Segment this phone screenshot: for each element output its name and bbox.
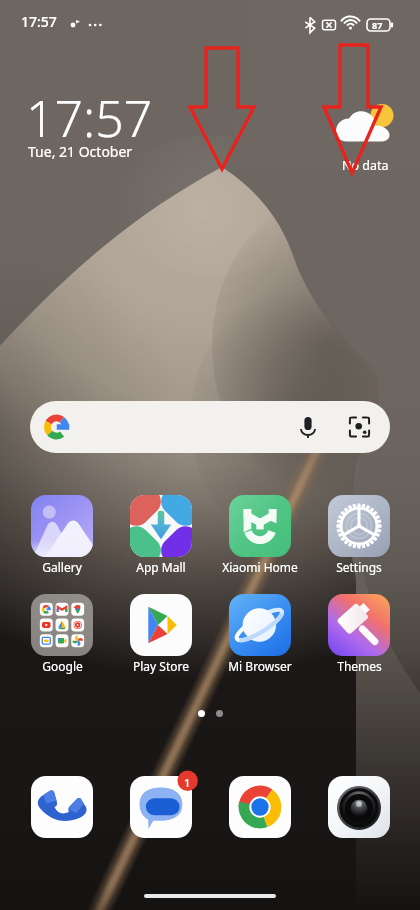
button[interactable]: Chrome — [229, 776, 291, 838]
button[interactable]: Search — [30, 401, 390, 453]
staticText: Xiaomi Home — [222, 559, 298, 575]
staticText: 17:57 — [21, 12, 57, 31]
button[interactable]: Mi Browser — [215, 594, 305, 674]
button[interactable]: Play Store — [116, 594, 206, 674]
staticText: Settings — [336, 559, 382, 575]
staticText: Tue, 21 October — [28, 142, 133, 161]
staticText: 87 — [372, 19, 383, 31]
button[interactable]: Settings — [314, 495, 404, 575]
staticText: Themes — [337, 658, 382, 674]
staticText: 17:57 — [26, 84, 153, 152]
button[interactable]: Xiaomi Home — [215, 495, 305, 575]
staticText: App Mall — [136, 559, 186, 575]
button[interactable]: Weather — [330, 100, 406, 168]
staticText: Google — [42, 658, 83, 674]
staticText: No data — [342, 157, 389, 174]
button[interactable]: Phone — [31, 776, 93, 838]
button[interactable]: Gallery — [17, 495, 107, 575]
button[interactable]: Messages — [130, 776, 192, 838]
staticText: Gallery — [42, 559, 82, 575]
staticText: Play Store — [133, 658, 189, 674]
staticText: Mi Browser — [228, 658, 292, 674]
button[interactable]: Themes — [314, 594, 404, 674]
staticText: 1 — [184, 775, 191, 790]
button[interactable]: Google — [17, 594, 107, 674]
button[interactable]: App Mall — [116, 495, 206, 575]
button[interactable]: Camera — [328, 776, 390, 838]
